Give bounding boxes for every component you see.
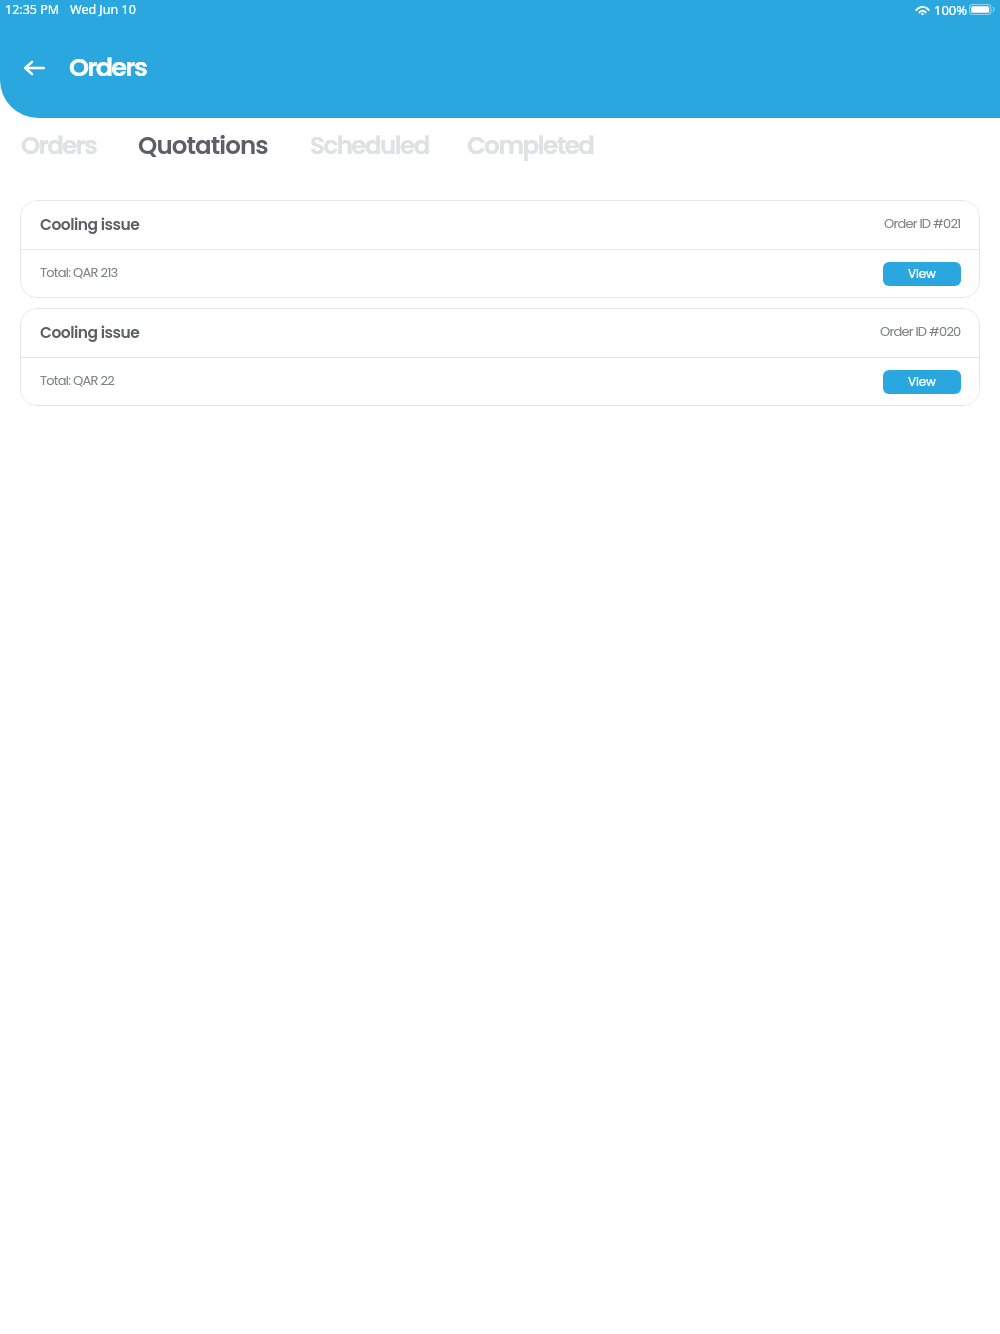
button[interactable]: View bbox=[883, 262, 961, 286]
button[interactable]: View bbox=[883, 370, 961, 394]
staticText: View bbox=[908, 373, 936, 390]
staticText: Order ID #020 bbox=[880, 322, 961, 340]
staticText: Orders bbox=[69, 49, 147, 85]
button[interactable]: Back bbox=[24, 53, 56, 83]
button[interactable]: Completed bbox=[467, 128, 594, 162]
staticText: Scheduled bbox=[310, 128, 429, 162]
button[interactable]: Scheduled bbox=[310, 128, 429, 162]
button[interactable]: Quotations bbox=[138, 128, 268, 162]
staticText: Total: QAR 22 bbox=[40, 371, 114, 389]
staticText: Completed bbox=[467, 128, 594, 162]
staticText: 100% bbox=[934, 1, 968, 19]
staticText: Total: QAR 213 bbox=[40, 263, 118, 281]
staticText: 12:35 PM bbox=[5, 1, 60, 18]
button[interactable]: Cooling issue bbox=[20, 200, 980, 298]
staticText: Wed Jun 10 bbox=[70, 1, 136, 18]
staticText: View bbox=[908, 265, 936, 282]
button[interactable]: Orders bbox=[21, 128, 97, 162]
staticText: Orders bbox=[21, 128, 97, 162]
staticText: Quotations bbox=[138, 128, 268, 162]
staticText: Order ID #021 bbox=[884, 214, 961, 232]
staticText: Cooling issue bbox=[40, 322, 140, 344]
staticText: Cooling issue bbox=[40, 214, 140, 236]
button[interactable]: Cooling issue bbox=[20, 308, 980, 406]
